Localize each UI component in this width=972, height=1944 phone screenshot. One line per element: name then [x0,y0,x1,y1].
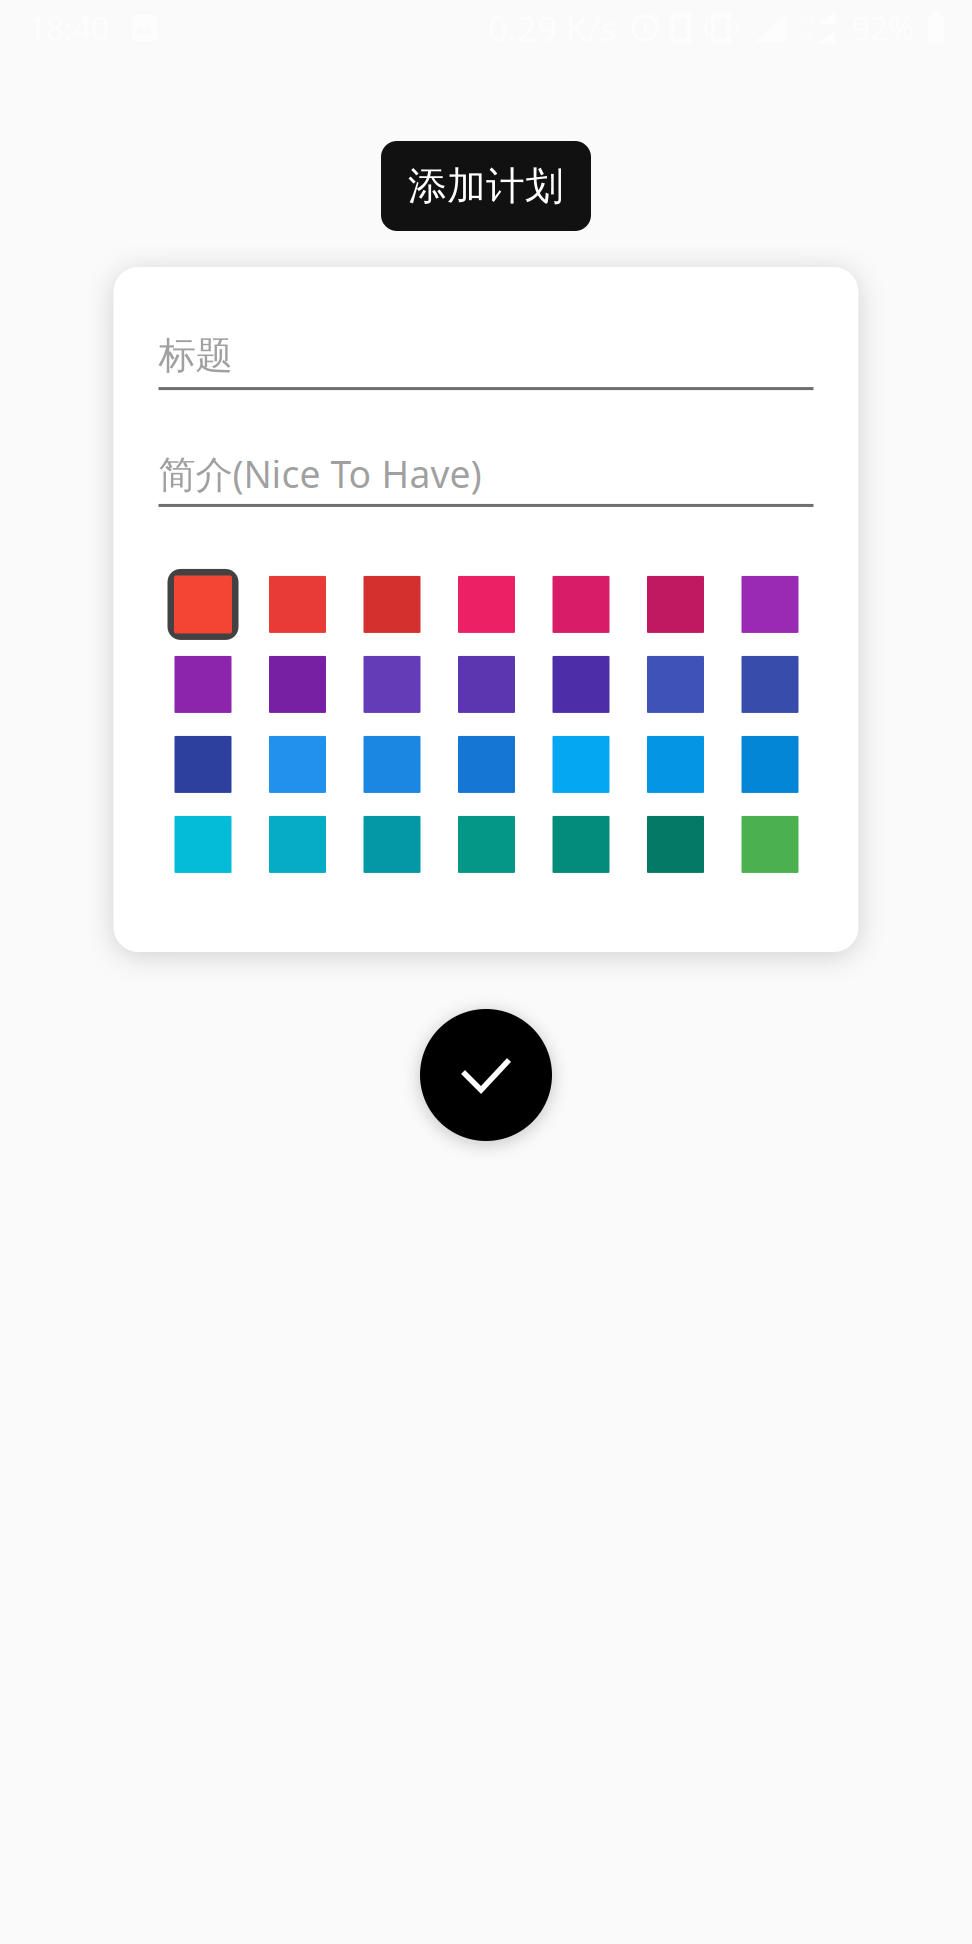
button[interactable]: Colour swatch [174,736,231,793]
button[interactable]: Colour swatch [174,656,231,713]
button[interactable]: Colour swatch [552,576,609,633]
staticText: 添加计划 [408,162,564,210]
staticText: 标题 [158,332,232,379]
button[interactable]: Colour swatch [647,816,704,873]
button[interactable]: Colour swatch [458,816,515,873]
button[interactable]: Colour swatch [552,736,609,793]
button[interactable]: Colour swatch [552,656,609,713]
button[interactable]: Colour swatch [647,736,704,793]
button[interactable]: Colour swatch [269,816,326,873]
staticText: 简介(Nice To Have) [158,448,481,499]
button[interactable]: 添加计划 [381,141,591,231]
button[interactable]: Colour swatch [174,816,231,873]
button[interactable]: Colour swatch [552,816,609,873]
button[interactable]: Confirm [420,1009,552,1141]
